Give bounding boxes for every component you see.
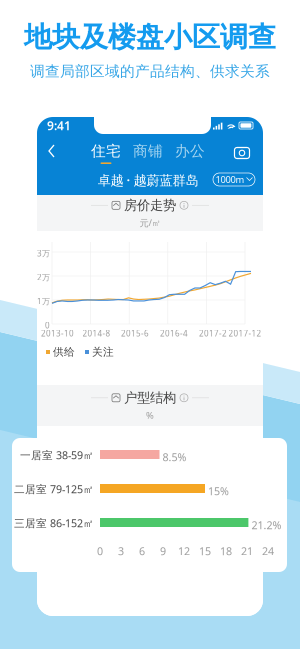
staticText: 供给 [53,345,75,358]
staticText: 2013-10 [41,328,74,339]
staticText: 元/㎡ [139,216,160,229]
staticText: 3万 [37,248,50,259]
staticText: % [146,409,154,421]
button[interactable]: Camera [229,139,255,167]
staticText: 6 [139,544,145,558]
staticText: 15 [199,544,211,558]
staticText: 9:41 [47,117,71,133]
staticText: 2017-2 [199,328,227,339]
button[interactable]: 1000m [213,173,255,186]
staticText: 调查局部区域的产品结构、供求关系 [30,62,270,80]
staticText: 三居室 86-152㎡ [14,516,94,530]
staticText: 房价走势 [124,197,176,213]
staticText: 18 [220,544,232,558]
button[interactable]: 办公 [170,139,210,167]
staticText: 2015-6 [121,328,149,339]
staticText: 2014-8 [82,328,110,339]
staticText: 21 [241,544,253,558]
staticText: 关注 [92,345,114,358]
staticText: 24 [262,544,274,558]
button[interactable]: Back [41,139,67,167]
staticText: 户型结构 [124,390,176,406]
staticText: 3 [118,544,124,558]
button[interactable]: 商铺 [128,139,168,167]
staticText: 2万 [37,272,50,283]
staticText: 9 [160,544,166,558]
staticText: 住宅 [91,142,121,160]
button[interactable]: 住宅 [86,139,126,167]
staticText: 0 [45,320,50,331]
staticText: 2016-4 [160,328,188,339]
staticText: 一居室 38-59㎡ [20,448,94,462]
staticText: 12 [178,544,190,558]
staticText: 1000m [215,173,244,186]
staticText: 办公 [175,142,205,160]
staticText: 地块及楼盘小区调查 [24,20,276,54]
staticText: 15% [208,484,229,498]
staticText: 21.2% [251,518,281,532]
staticText: 商铺 [133,142,163,160]
staticText: 8.5% [162,450,186,464]
staticText: 1万 [37,296,50,307]
staticText: 2017-12 [228,328,261,339]
staticText: 卓越 · 越蔚蓝群岛 [97,171,198,189]
staticText: 二居室 79-125㎡ [14,482,94,496]
staticText: 0 [97,544,103,558]
